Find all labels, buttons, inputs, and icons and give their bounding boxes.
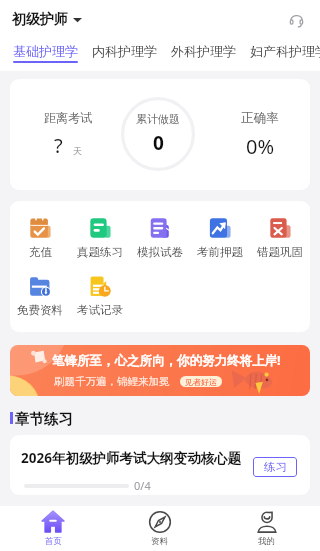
staticText: 妇产科护理学 <box>250 43 320 59</box>
staticText: 初级护师 <box>12 11 68 29</box>
staticText: 模拟试卷 <box>137 245 183 259</box>
button[interactable]: 首页 <box>0 506 106 551</box>
button[interactable]: 外科护理学 <box>171 40 236 71</box>
button[interactable]: 我的 <box>213 506 320 551</box>
staticText: 累计做题 <box>136 112 180 126</box>
button[interactable]: 妇产科护理学 <box>250 40 320 71</box>
button[interactable]: 初级护师 <box>12 7 82 33</box>
button[interactable]: 练习 <box>253 457 297 477</box>
button[interactable]: 资料 <box>106 506 213 551</box>
staticText: 首页 <box>45 536 62 547</box>
button[interactable]: 考试记录 <box>70 275 130 317</box>
staticText: 基础护理学 <box>13 43 78 59</box>
button[interactable]: 免费资料 <box>10 275 70 317</box>
staticText: 错题巩固 <box>257 245 303 259</box>
staticText: 天 <box>73 145 82 156</box>
staticText: 外科护理学 <box>171 43 236 59</box>
button[interactable]: 真题练习 <box>70 217 130 259</box>
staticText: 内科护理学 <box>92 43 157 59</box>
button[interactable]: 考前押题 <box>190 217 250 259</box>
staticText: 刷题千万遍，锦鲤来加冕 <box>54 375 170 388</box>
button[interactable]: 内科护理学 <box>92 40 157 71</box>
staticText: 真题练习 <box>77 245 123 259</box>
staticText: 我的 <box>258 536 275 547</box>
button[interactable]: 充值 <box>10 217 70 259</box>
staticText: 笔锋所至，心之所向，你的努力终将上岸! <box>52 352 281 369</box>
staticText: 免费资料 <box>17 303 63 317</box>
staticText: 考试记录 <box>77 303 123 317</box>
button[interactable]: Customer service <box>284 8 308 32</box>
staticText: 0/4 <box>134 478 151 493</box>
staticText: 练习 <box>264 460 287 474</box>
button[interactable]: 基础护理学 <box>13 40 78 71</box>
button[interactable]: 模拟试卷 <box>130 217 190 259</box>
staticText: 正确率 <box>241 110 279 126</box>
staticText: 距离考试 <box>44 110 92 125</box>
button[interactable]: 笔锋所至，心之所向，你的努力终将上岸! <box>10 345 310 396</box>
staticText: 见者好运 <box>185 377 217 387</box>
button[interactable]: 错题巩固 <box>250 217 310 259</box>
staticText: ? <box>54 132 63 159</box>
staticText: 考前押题 <box>197 245 243 259</box>
staticText: 2026年初级护师考试大纲变动核心题 <box>21 449 241 467</box>
staticText: 0% <box>246 133 275 160</box>
button[interactable]: 2026年初级护师考试大纲变动核心题 <box>10 435 310 495</box>
staticText: 章节练习 <box>15 410 73 426</box>
staticText: 资料 <box>151 536 168 547</box>
staticText: 充值 <box>29 245 52 259</box>
staticText: 0 <box>153 130 164 156</box>
